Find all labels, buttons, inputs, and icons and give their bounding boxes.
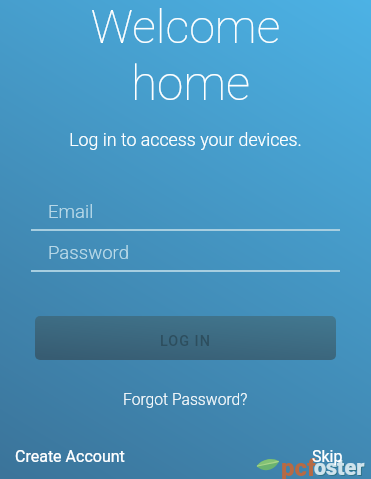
staticText: Password — [48, 242, 130, 264]
staticText: home — [5, 56, 371, 112]
staticText: Log in to access your devices. — [0, 129, 371, 150]
button[interactable]: Password — [31, 240, 340, 274]
staticText: Email — [48, 201, 94, 223]
staticText: Forgot Password? — [123, 390, 248, 408]
button[interactable]: Email — [31, 199, 340, 233]
button[interactable]: Skip — [299, 437, 357, 479]
staticText: oster — [314, 455, 365, 479]
button[interactable]: LOG IN — [35, 316, 336, 360]
button[interactable]: Create Account — [3, 437, 137, 479]
staticText: Welcome — [0, 0, 371, 55]
staticText: Create Account — [15, 447, 125, 466]
staticText: pcf — [281, 454, 316, 479]
staticText: oster — [315, 456, 366, 479]
staticText: LOG IN — [160, 333, 211, 350]
staticText: Skip — [312, 447, 343, 466]
button[interactable]: Forgot Password? — [113, 382, 258, 412]
